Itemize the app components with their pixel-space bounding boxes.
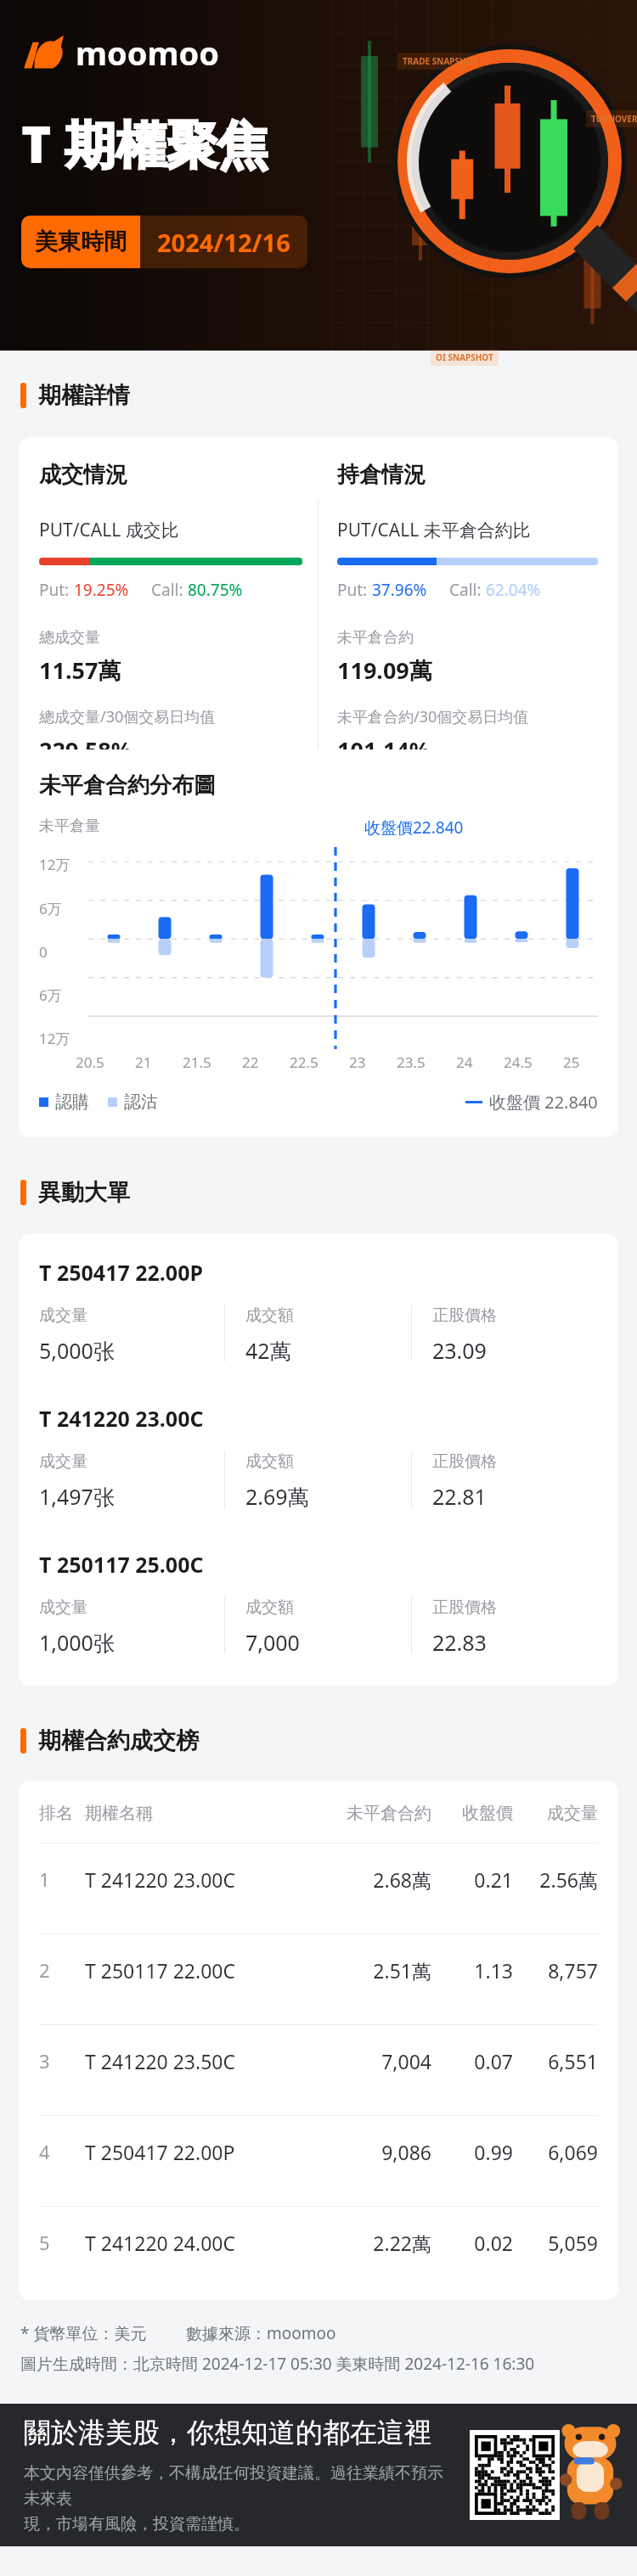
staticText: 期權詳情 xyxy=(38,381,130,410)
staticText: 期權合約成交榜 xyxy=(38,1726,199,1755)
staticText: 成交量 xyxy=(39,1451,87,1472)
staticText: 1,000张 xyxy=(39,1628,115,1657)
staticText: 未平倉合約 xyxy=(331,1803,431,1824)
staticText: 認購 xyxy=(55,1092,89,1113)
staticText: 3 xyxy=(39,2048,85,2074)
staticText: 21.5 xyxy=(183,1052,211,1072)
staticText: 0.07 xyxy=(431,2048,513,2074)
staticText: 11.57萬 xyxy=(39,654,121,686)
staticText: TRADE SNAPSHOT xyxy=(403,55,478,67)
staticText: 關於港美股，你想知道的都在這裡 xyxy=(24,2416,431,2450)
staticText: 21 xyxy=(135,1052,152,1072)
staticText: 成交額 xyxy=(245,1597,294,1618)
staticText: 12万 xyxy=(39,855,70,874)
staticText: 2.56萬 xyxy=(513,1866,598,1893)
staticText: 22 xyxy=(242,1052,259,1072)
staticText: 正股價格 xyxy=(432,1451,497,1472)
staticText: T 250117 25.00C xyxy=(39,1550,204,1579)
staticText: 收盤價 xyxy=(431,1803,513,1824)
staticText: 20.5 xyxy=(76,1052,104,1072)
staticText: 圖片生成時間：北京時間 2024-12-17 05:30 美東時間 2024-1… xyxy=(20,2353,535,2375)
staticText: 2.69萬 xyxy=(245,1482,309,1511)
staticText: T 241220 24.00C xyxy=(85,2230,331,2256)
staticText: 2.68萬 xyxy=(331,1866,431,1893)
staticText: 收盤價22.840 xyxy=(364,817,464,839)
staticText: Put: xyxy=(39,579,74,601)
staticText: 成交情況 xyxy=(39,461,127,489)
staticText: 22.83 xyxy=(432,1628,487,1657)
staticText: T 250417 22.00P xyxy=(39,1258,203,1287)
staticText: 22.5 xyxy=(290,1052,318,1072)
staticText: 7,004 xyxy=(331,2048,431,2074)
button[interactable]: 1 xyxy=(39,1844,598,1915)
staticText: 25 xyxy=(563,1052,580,1072)
staticText: 成交量 xyxy=(39,1305,87,1326)
staticText: 成交額 xyxy=(245,1451,294,1472)
staticText: Call: xyxy=(449,579,486,601)
button[interactable]: 3 xyxy=(39,2025,598,2096)
staticText: 6万 xyxy=(39,899,62,918)
button[interactable]: T 241220 23.00C xyxy=(39,1370,598,1516)
staticText: 2024/12/16 xyxy=(157,226,290,259)
staticText: 6,551 xyxy=(513,2048,598,2074)
staticText: 229.58% xyxy=(39,734,132,749)
button[interactable]: 2 xyxy=(39,1934,598,2006)
staticText: PUT/CALL 成交比 xyxy=(39,518,179,542)
staticText: 6,069 xyxy=(513,2139,598,2165)
staticText: 成交額 xyxy=(245,1305,294,1326)
staticText: 0.99 xyxy=(431,2139,513,2165)
staticText: 收盤價 22.840 xyxy=(489,1091,598,1114)
button[interactable]: 5 xyxy=(39,2207,598,2278)
button[interactable]: 成交情況 xyxy=(19,437,618,1137)
staticText: 1,497张 xyxy=(39,1482,115,1511)
staticText: 1 xyxy=(39,1866,85,1892)
staticText: moomoo xyxy=(76,31,220,75)
staticText: 24 xyxy=(456,1052,473,1072)
staticText: 42萬 xyxy=(245,1336,291,1365)
staticText: 未平倉量 xyxy=(39,817,100,836)
staticText: T 250417 22.00P xyxy=(85,2139,331,2165)
staticText: 成交量 xyxy=(39,1597,87,1618)
button[interactable]: T 250417 22.00P xyxy=(39,1258,598,1370)
button[interactable]: 美東時間 xyxy=(21,216,307,268)
staticText: 8,757 xyxy=(513,1957,598,1984)
staticText: 2.51萬 xyxy=(331,1957,431,1984)
staticText: 異動大單 xyxy=(38,1178,130,1207)
staticText: 101.14% xyxy=(337,734,431,749)
button[interactable]: T 250117 25.00C xyxy=(39,1516,598,1662)
staticText: OI SNAPSHOT xyxy=(436,351,493,363)
staticText: Put: xyxy=(337,579,372,601)
staticText: 23.5 xyxy=(397,1052,426,1072)
staticText: 正股價格 xyxy=(432,1305,497,1326)
staticText: 80.75% xyxy=(188,579,243,601)
staticText: T 250117 22.00C xyxy=(85,1957,331,1984)
staticText: 0.21 xyxy=(431,1866,513,1893)
staticText: 未平倉合約 xyxy=(337,628,414,648)
staticText: 認沽 xyxy=(124,1092,158,1113)
staticText: 未平倉合約/30個交易日均值 xyxy=(337,706,529,727)
staticText: 美東時間 xyxy=(35,227,127,256)
staticText: 4 xyxy=(39,2139,85,2164)
staticText: 6万 xyxy=(39,985,62,1005)
staticText: 19.25% xyxy=(74,579,129,601)
staticText: T 241220 23.00C xyxy=(39,1404,204,1433)
staticText: 7,000 xyxy=(245,1628,300,1657)
staticText: 本文內容僅供參考，不構成任何投資建議。過往業績不預示未來表 現，市場有風險，投資… xyxy=(24,2463,448,2534)
staticText: PUT/CALL 未平倉合約比 xyxy=(337,518,531,542)
staticText: 0.02 xyxy=(431,2230,513,2256)
staticText: 成交量 xyxy=(513,1803,598,1824)
staticText: 62.04% xyxy=(486,579,541,601)
staticText: 9,086 xyxy=(331,2139,431,2165)
staticText: * 貨幣單位：美元 xyxy=(20,2322,147,2344)
staticText: 5 xyxy=(39,2230,85,2255)
staticText: Call: xyxy=(151,579,188,601)
staticText: 持倉情況 xyxy=(337,461,426,489)
button[interactable]: 4 xyxy=(39,2116,598,2187)
staticText: 5,000张 xyxy=(39,1336,115,1365)
staticText: 5,059 xyxy=(513,2230,598,2256)
staticText: 23 xyxy=(349,1052,366,1072)
staticText: 24.5 xyxy=(504,1052,533,1072)
staticText: 期權名稱 xyxy=(85,1803,331,1824)
staticText: 0 xyxy=(39,942,48,962)
staticText: 22.81 xyxy=(432,1482,487,1511)
